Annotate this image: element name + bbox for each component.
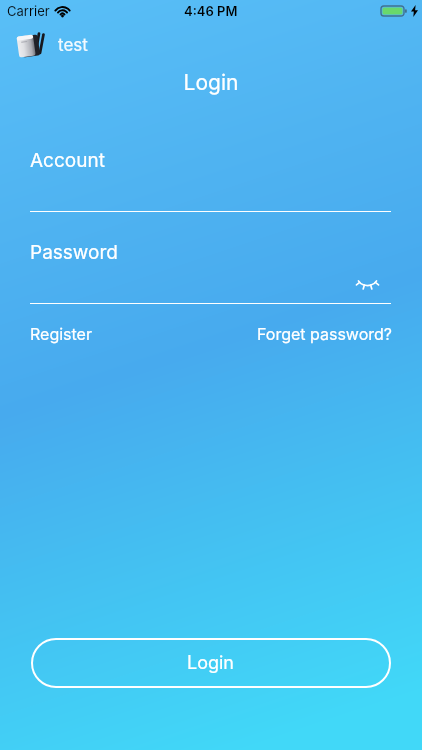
staticText: 4:46 PM bbox=[184, 3, 238, 19]
button[interactable] bbox=[357, 279, 378, 292]
button[interactable]: Register bbox=[30, 324, 92, 343]
button[interactable]: Forget password? bbox=[257, 324, 392, 343]
staticText: test bbox=[58, 35, 88, 56]
staticText: Login bbox=[0, 70, 422, 95]
staticText: Forget password? bbox=[257, 324, 392, 343]
staticText: Password bbox=[30, 241, 118, 264]
staticText: Login bbox=[187, 652, 235, 674]
staticText: Account bbox=[30, 149, 105, 172]
button[interactable]: test bbox=[15, 31, 88, 59]
staticText: Register bbox=[30, 324, 92, 343]
button[interactable]: Login bbox=[31, 638, 391, 688]
staticText: Carrier bbox=[7, 3, 50, 19]
